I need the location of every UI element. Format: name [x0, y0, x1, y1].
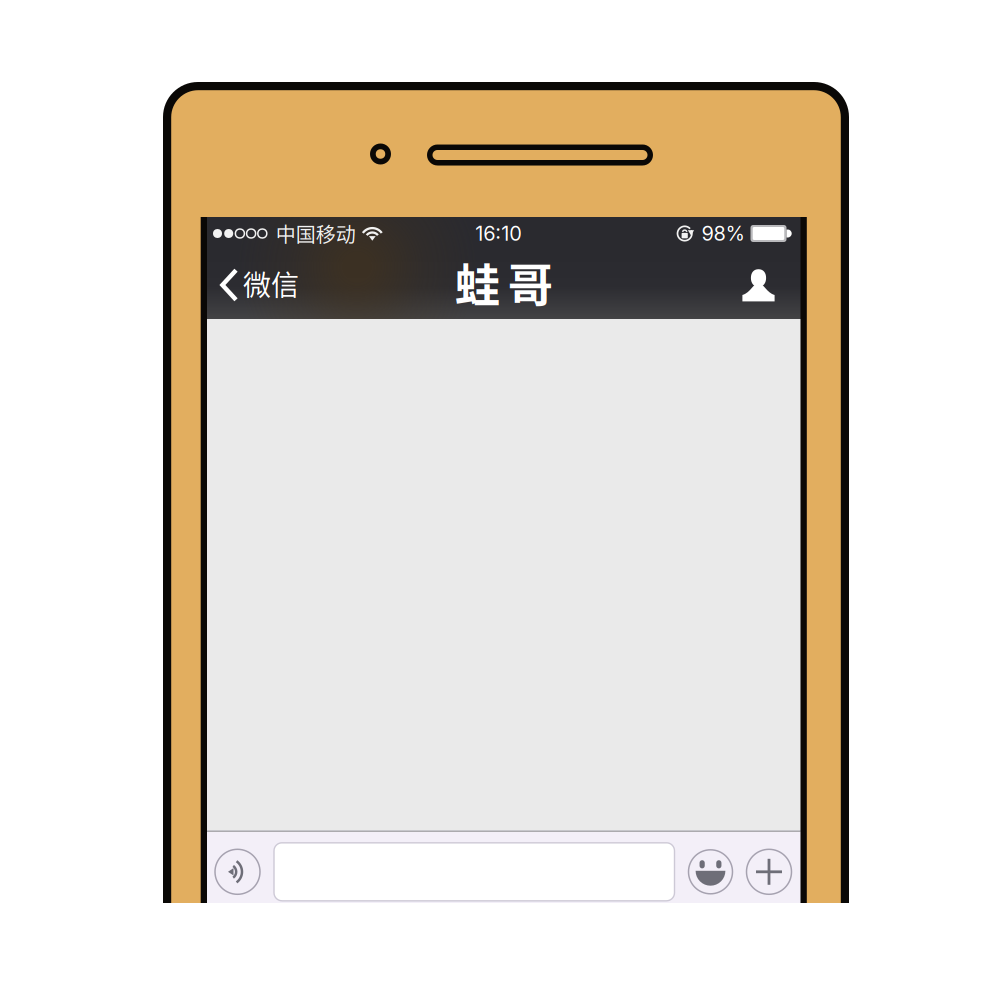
staticText: 中国移动 — [276, 219, 356, 248]
staticText: 蛙 — [455, 250, 500, 315]
button[interactable]: More — [746, 849, 791, 894]
button[interactable]: Hold to talk — [215, 849, 260, 894]
staticText: 16:10 — [475, 221, 522, 246]
staticText: 哥 — [508, 250, 553, 315]
button[interactable]: Emoji — [688, 850, 732, 894]
button[interactable]: 微信 — [207, 251, 311, 316]
button[interactable]: Contact profile — [724, 251, 800, 316]
staticText: 微信 — [243, 263, 299, 304]
staticText: 98% — [701, 221, 744, 246]
